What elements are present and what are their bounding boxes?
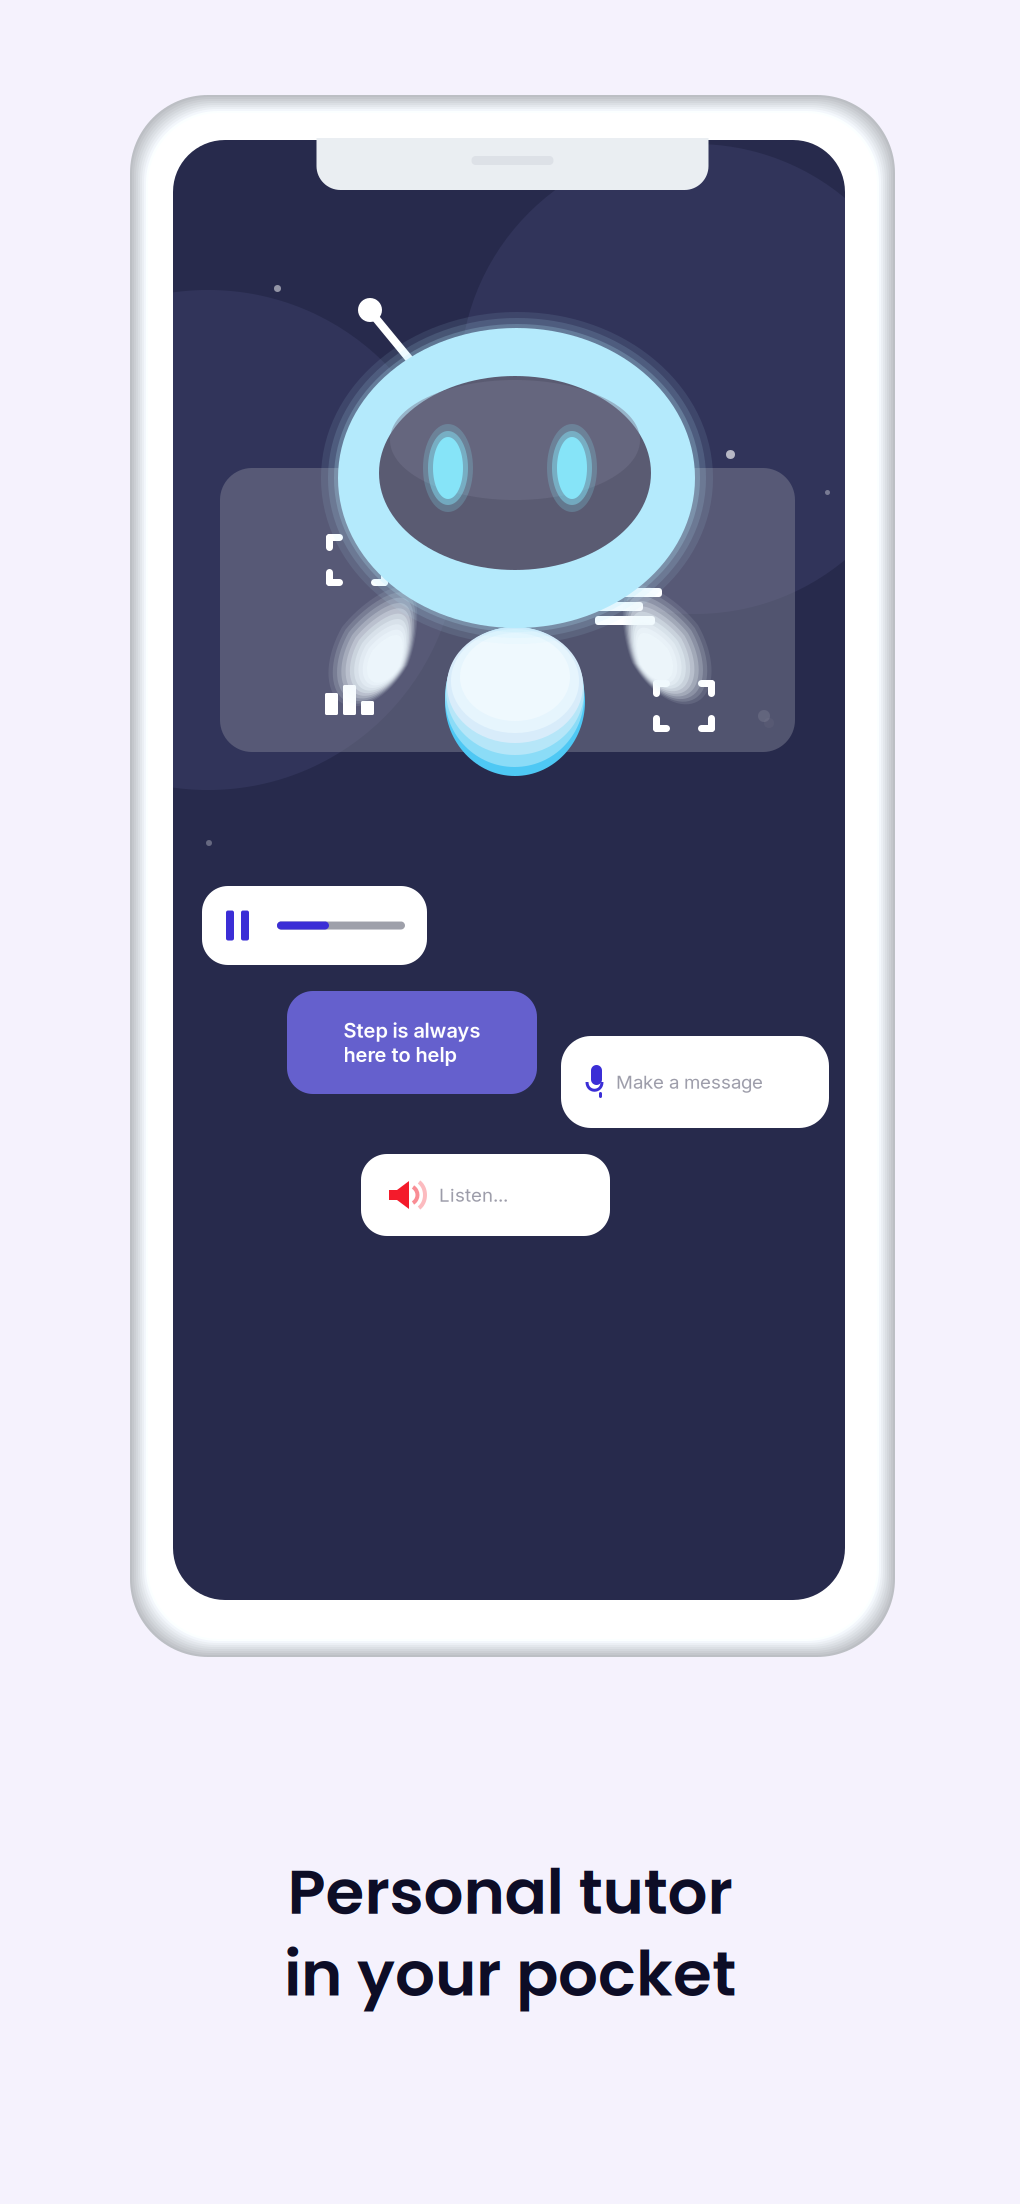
staticText: Make a message	[616, 1071, 763, 1093]
staticText: Personal tutor	[287, 1848, 732, 1936]
staticText: Listen...	[439, 1184, 508, 1206]
button[interactable]: Step is always here to help	[287, 991, 537, 1094]
staticText: in your pocket	[284, 1930, 736, 2017]
button[interactable]: Pause audio	[202, 886, 427, 965]
button[interactable]: Listen...	[361, 1154, 610, 1236]
button[interactable]: Make a message	[561, 1036, 829, 1128]
staticText: Step is always here to help	[343, 1018, 480, 1067]
